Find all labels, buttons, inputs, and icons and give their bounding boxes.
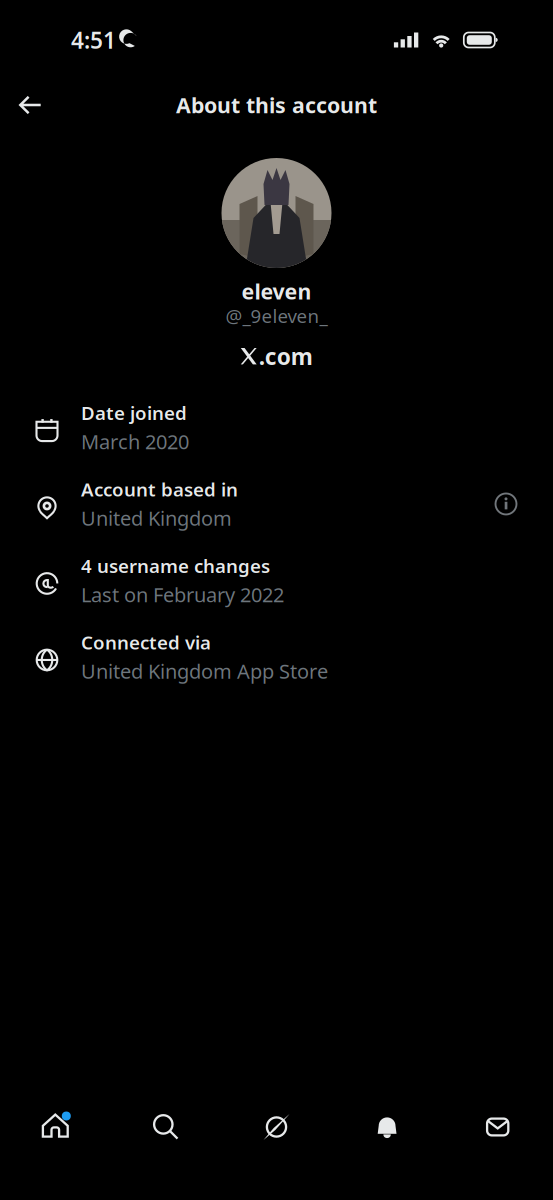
staticText: Last on February 2022 [81,581,284,608]
staticText: Connected via [81,630,211,655]
button[interactable]: Messages [442,1085,553,1169]
staticText: Date joined [81,400,187,425]
staticText: United Kingdom [81,505,232,531]
staticText: 4 username changes [81,553,270,578]
button[interactable]: Notifications [332,1085,442,1169]
staticText: Account based in [81,477,238,502]
button[interactable]: Search [111,1085,221,1169]
staticText: eleven [241,277,311,305]
button[interactable]: Back [0,83,61,127]
button[interactable]: Grok [221,1085,332,1169]
button[interactable]: More info [482,476,530,532]
staticText: About this account [176,91,377,119]
staticText: United Kingdom App Store [81,658,328,684]
staticText: 4:51 [71,25,116,55]
staticText: March 2020 [81,428,189,455]
staticText: .com [259,341,313,371]
staticText: @_9eleven_ [225,303,327,328]
button[interactable]: Home [0,1085,111,1169]
